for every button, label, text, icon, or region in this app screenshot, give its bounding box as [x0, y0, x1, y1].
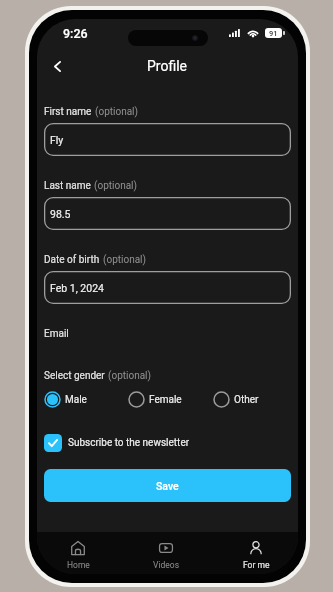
staticText: (optional): [103, 254, 147, 266]
staticText: (optional): [94, 180, 138, 192]
button[interactable]: Videos: [136, 532, 196, 574]
staticText: (optional): [95, 106, 139, 118]
staticText: 91: [269, 29, 278, 38]
staticText: Subscribe to the newsletter: [68, 437, 190, 449]
button[interactable]: Feb 1, 2024: [44, 271, 291, 304]
button[interactable]: 98.5: [44, 197, 291, 230]
button[interactable]: Female: [128, 391, 182, 408]
button[interactable]: Male: [44, 391, 87, 408]
staticText: Videos: [153, 560, 180, 570]
staticText: (optional): [108, 370, 152, 382]
staticText: Feb 1, 2024: [50, 282, 104, 294]
button[interactable]: For me: [226, 532, 286, 574]
button[interactable]: Fly: [44, 123, 291, 156]
staticText: Select gender: [44, 370, 105, 382]
staticText: Other: [234, 394, 259, 406]
staticText: For me: [243, 560, 270, 570]
staticText: Date of birth: [44, 254, 100, 266]
staticText: Email: [44, 328, 69, 340]
button[interactable]: Other: [213, 391, 259, 408]
button[interactable]: Home: [48, 532, 108, 574]
staticText: Home: [67, 560, 90, 570]
staticText: Profile: [147, 58, 188, 74]
staticText: First name: [44, 106, 92, 118]
staticText: Save: [156, 480, 179, 492]
button[interactable]: Save: [44, 469, 291, 502]
staticText: Male: [65, 394, 87, 406]
button[interactable]: Back: [45, 54, 69, 78]
staticText: Last name: [44, 180, 91, 192]
staticText: 98.5: [50, 208, 71, 220]
staticText: 9:26: [63, 26, 88, 41]
staticText: Female: [149, 394, 182, 406]
staticText: Fly: [50, 134, 64, 146]
button[interactable]: Subscribe to the newsletter: [44, 434, 190, 452]
